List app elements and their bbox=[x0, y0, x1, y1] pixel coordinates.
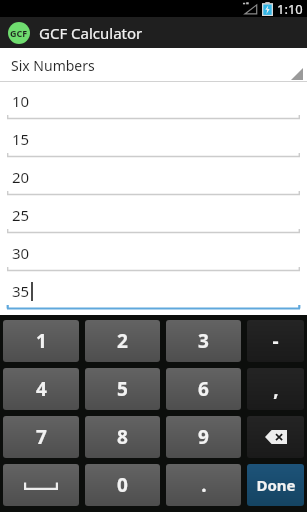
staticText: 10 bbox=[12, 91, 30, 111]
button[interactable]: 6 bbox=[166, 368, 241, 410]
button[interactable]: - bbox=[247, 320, 304, 362]
button[interactable]: , bbox=[247, 368, 304, 410]
button[interactable]: 5 bbox=[85, 368, 160, 410]
button[interactable]: Space bbox=[3, 464, 79, 506]
button[interactable]: 10 bbox=[7, 82, 300, 120]
staticText: Six Numbers bbox=[11, 56, 95, 75]
staticText: 0 bbox=[117, 472, 128, 498]
button[interactable]: 2 bbox=[85, 320, 160, 362]
button[interactable]: 0 bbox=[85, 464, 160, 506]
staticText: 3 bbox=[198, 328, 209, 354]
button[interactable]: 7 bbox=[3, 416, 79, 458]
button[interactable]: 9 bbox=[166, 416, 241, 458]
staticText: 35 bbox=[12, 281, 30, 301]
staticText: 7 bbox=[36, 424, 47, 450]
staticText: 20 bbox=[12, 167, 30, 187]
staticText: 30 bbox=[12, 243, 30, 263]
staticText: 25 bbox=[12, 205, 30, 225]
button[interactable]: 35 bbox=[7, 272, 300, 310]
staticText: 4 bbox=[36, 376, 47, 402]
button[interactable]: 8 bbox=[85, 416, 160, 458]
button[interactable]: 3 bbox=[166, 320, 241, 362]
button[interactable]: 4 bbox=[3, 368, 79, 410]
staticText: 6 bbox=[198, 376, 209, 402]
button[interactable]: 15 bbox=[7, 120, 300, 158]
button[interactable]: 30 bbox=[7, 234, 300, 272]
button[interactable]: Done bbox=[247, 464, 304, 506]
staticText: - bbox=[272, 328, 279, 354]
button[interactable]: . bbox=[166, 464, 241, 506]
button[interactable]: Backspace bbox=[247, 416, 304, 458]
staticText: . bbox=[201, 472, 207, 498]
button[interactable]: 20 bbox=[7, 158, 300, 196]
button[interactable]: 25 bbox=[7, 196, 300, 234]
staticText: 8 bbox=[117, 424, 128, 450]
staticText: 2 bbox=[117, 328, 128, 354]
staticText: 5 bbox=[117, 376, 128, 402]
button[interactable]: Six Numbers bbox=[0, 48, 307, 82]
staticText: GCF Calculator bbox=[39, 23, 143, 43]
staticText: 1:10 bbox=[277, 0, 303, 17]
staticText: Done bbox=[256, 475, 296, 495]
staticText: , bbox=[273, 376, 279, 402]
button[interactable]: 1 bbox=[3, 320, 79, 362]
staticText: GCF bbox=[10, 27, 28, 39]
staticText: 9 bbox=[198, 424, 209, 450]
staticText: 1 bbox=[36, 328, 47, 354]
staticText: 15 bbox=[12, 129, 30, 149]
